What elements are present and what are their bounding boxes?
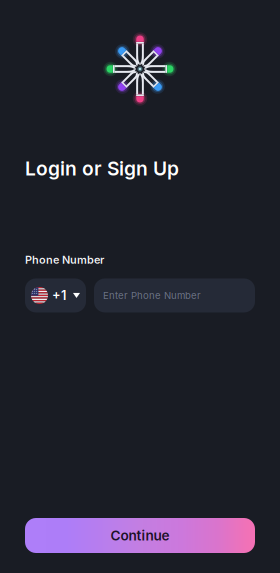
- staticText: Phone Number: [25, 253, 104, 266]
- staticText: Login or Sign Up: [25, 157, 179, 180]
- button[interactable]: Continue: [25, 518, 255, 553]
- staticText: +1: [52, 288, 66, 303]
- button[interactable]: Enter Phone Number: [94, 278, 255, 312]
- staticText: Enter Phone Number: [103, 290, 201, 301]
- button[interactable]: +1: [25, 278, 86, 312]
- staticText: Continue: [110, 527, 169, 544]
